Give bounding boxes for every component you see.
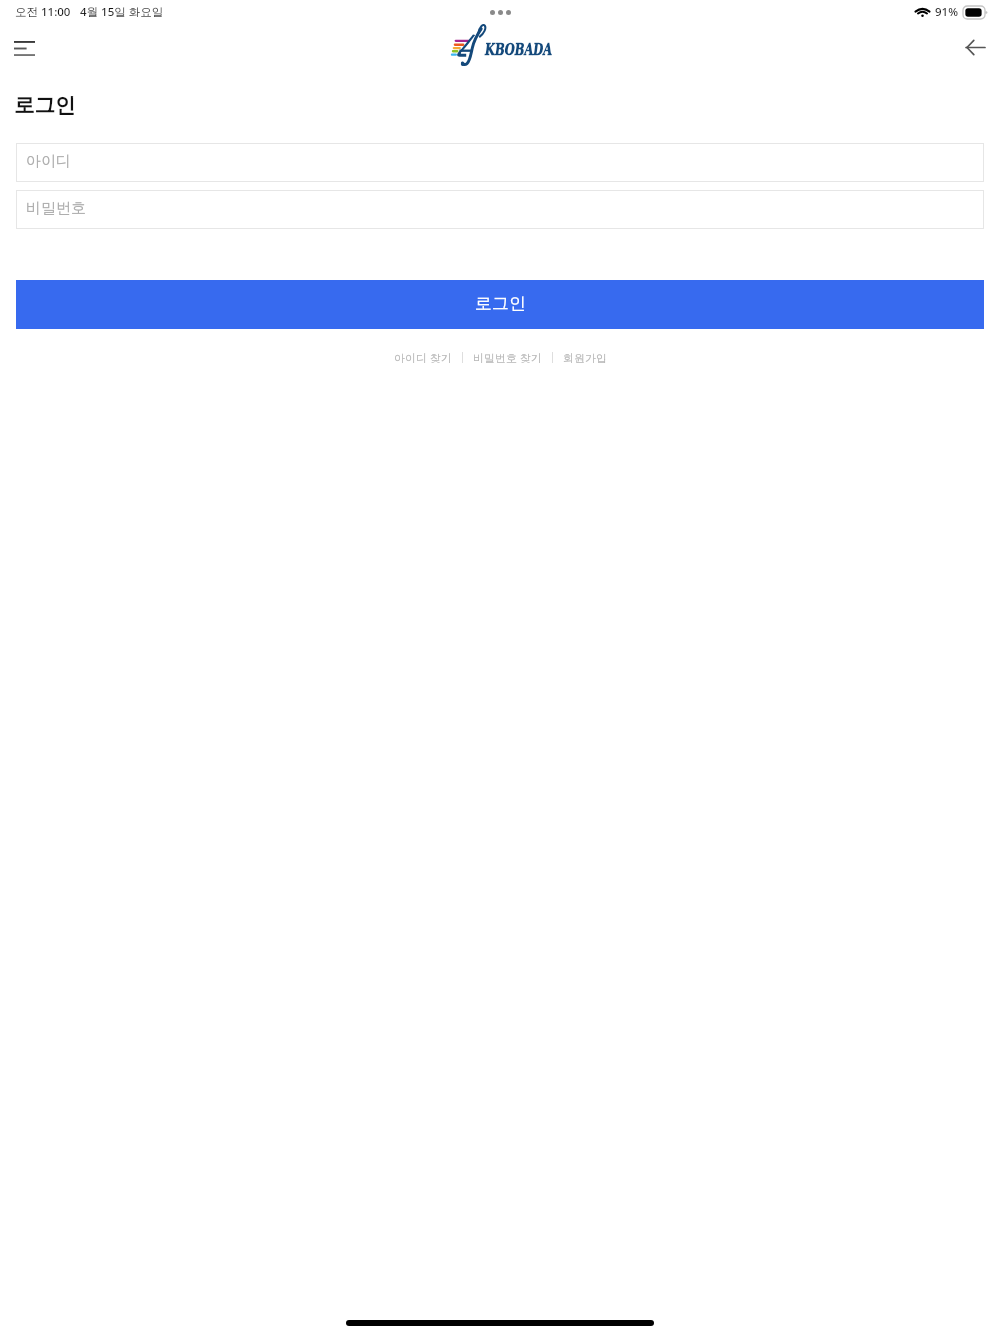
- button[interactable]: Back: [951, 23, 999, 71]
- button[interactable]: 비밀번호: [16, 190, 984, 229]
- staticText: 로그인: [475, 293, 526, 314]
- staticText: KBOBADA: [485, 40, 552, 59]
- button[interactable]: 아이디 찾기: [394, 346, 452, 369]
- staticText: 오전 11:00: [15, 4, 71, 20]
- button[interactable]: 로그인: [16, 280, 984, 329]
- staticText: 비밀번호: [26, 199, 86, 218]
- staticText: 비밀번호 찾기: [473, 350, 542, 365]
- button[interactable]: 아이디: [16, 143, 984, 182]
- button[interactable]: 회원가입: [563, 347, 607, 369]
- staticText: 4월 15일 화요일: [80, 4, 164, 20]
- staticText: 회원가입: [563, 351, 607, 365]
- button[interactable]: Menu: [0, 24, 48, 72]
- staticText: 로그인: [14, 92, 76, 118]
- staticText: 91%: [935, 4, 958, 20]
- staticText: 아이디 찾기: [394, 350, 452, 365]
- staticText: 아이디: [26, 152, 71, 171]
- button[interactable]: 비밀번호 찾기: [473, 346, 542, 369]
